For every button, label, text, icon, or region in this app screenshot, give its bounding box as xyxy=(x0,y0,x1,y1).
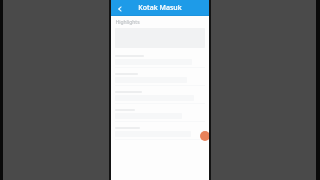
button[interactable]: Back xyxy=(114,3,125,14)
staticText: Highlights xyxy=(115,19,140,26)
button[interactable] xyxy=(111,53,209,71)
staticText: Kotak Masuk xyxy=(138,3,182,13)
button[interactable] xyxy=(111,89,209,107)
button[interactable] xyxy=(111,71,209,89)
button[interactable]: Compose xyxy=(200,131,210,141)
button[interactable] xyxy=(111,107,209,125)
button[interactable] xyxy=(111,125,209,143)
button[interactable]: Kotak Masuk xyxy=(138,3,182,13)
